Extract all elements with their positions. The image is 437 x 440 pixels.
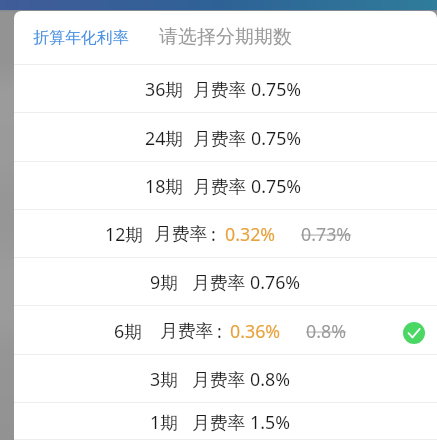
staticText: 0.8% [306, 319, 346, 343]
button[interactable]: 折算年化利率 [33, 28, 129, 48]
button[interactable]: 12期 [14, 210, 437, 258]
staticText: : [217, 319, 222, 343]
staticText: 36期 [145, 77, 184, 101]
button[interactable]: 24期 [14, 113, 437, 162]
staticText: 月费率 0.75% [193, 174, 302, 198]
staticText: 18期 [145, 174, 184, 198]
staticText: 0.36% [230, 319, 281, 343]
staticText: 12期 [105, 222, 144, 246]
staticText: 月费率 0.76% [192, 270, 301, 294]
button[interactable]: 36期 [14, 65, 437, 113]
staticText: 0.32% [225, 222, 276, 246]
button[interactable]: 3期 [14, 355, 437, 403]
staticText: 月费率 1.5% [192, 410, 290, 434]
staticText: 请选择分期期数 [159, 25, 292, 49]
staticText: 24期 [145, 126, 184, 150]
staticText: 月费率 [154, 223, 208, 245]
staticText: 月费率 0.8% [192, 367, 290, 391]
button[interactable]: 9期 [14, 258, 437, 306]
staticText: : [211, 222, 216, 246]
staticText: 9期 [150, 270, 178, 294]
button[interactable]: 1期 [14, 403, 437, 440]
button[interactable]: 18期 [14, 162, 437, 210]
staticText: 0.73% [301, 222, 352, 246]
other: Selected [403, 322, 425, 344]
staticText: 月费率 [160, 320, 214, 342]
staticText: 3期 [150, 367, 178, 391]
staticText: 1期 [150, 410, 178, 434]
button[interactable]: 6期 [14, 306, 437, 355]
staticText: 6期 [114, 319, 142, 343]
staticText: 月费率 0.75% [193, 126, 302, 150]
staticText: 月费率 0.75% [193, 77, 302, 101]
